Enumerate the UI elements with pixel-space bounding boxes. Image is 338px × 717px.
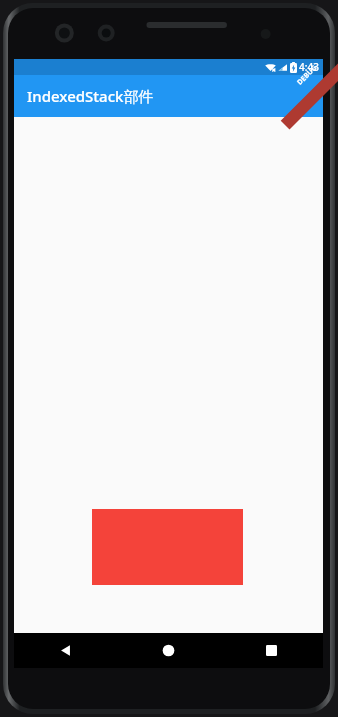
staticText: 4:43 (299, 60, 319, 74)
staticText: IndexedStack部件 (27, 86, 154, 106)
staticText: DEBUG (295, 63, 320, 87)
button[interactable]: Home (117, 633, 220, 668)
button[interactable]: Back (14, 633, 117, 668)
button[interactable]: Recent apps (220, 633, 323, 668)
button[interactable]: IndexedStack部件 (14, 75, 323, 117)
